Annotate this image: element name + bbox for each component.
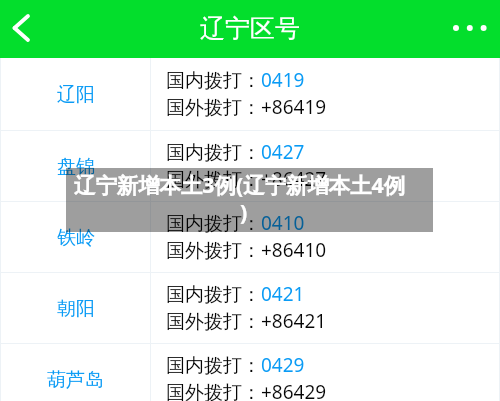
button[interactable]: 葫芦岛 — [0, 344, 500, 401]
staticText: 国内拨打：0421 — [166, 281, 305, 307]
staticText: 葫芦岛 — [47, 368, 104, 392]
button[interactable]: 铁岭 — [0, 202, 500, 272]
staticText: 国外拨打：+86421 — [166, 308, 327, 334]
staticText: 辽宁区号 — [200, 13, 300, 44]
staticText: 国内拨打：0427 — [166, 139, 305, 165]
staticText: 国外拨打：+86410 — [166, 237, 327, 263]
button[interactable]: More options — [440, 0, 500, 58]
staticText: 铁岭 — [57, 226, 95, 250]
staticText: 国内拨打：0410 — [166, 210, 305, 236]
staticText: 国外拨打：+86429 — [166, 379, 327, 401]
button[interactable]: 盘锦 — [0, 131, 500, 201]
staticText: ) — [240, 197, 248, 226]
staticText: 朝阳 — [57, 297, 95, 321]
staticText: 辽宁新增本土3例(辽宁新增本土4例 — [74, 170, 406, 199]
staticText: 国内拨打：0419 — [166, 67, 305, 93]
staticText: 国外拨打：+86427 — [166, 166, 327, 192]
button[interactable]: 辽阳 — [0, 58, 500, 130]
staticText: 辽阳 — [57, 83, 95, 107]
staticText: 国内拨打：0429 — [166, 352, 305, 378]
staticText: 国外拨打：+86419 — [166, 94, 327, 120]
staticText: 盘锦 — [57, 155, 95, 179]
button[interactable]: 辽宁新增本土3例(辽宁新增本土4例 — [66, 168, 433, 232]
button[interactable]: 朝阳 — [0, 273, 500, 343]
button[interactable]: Back — [0, 5, 48, 53]
